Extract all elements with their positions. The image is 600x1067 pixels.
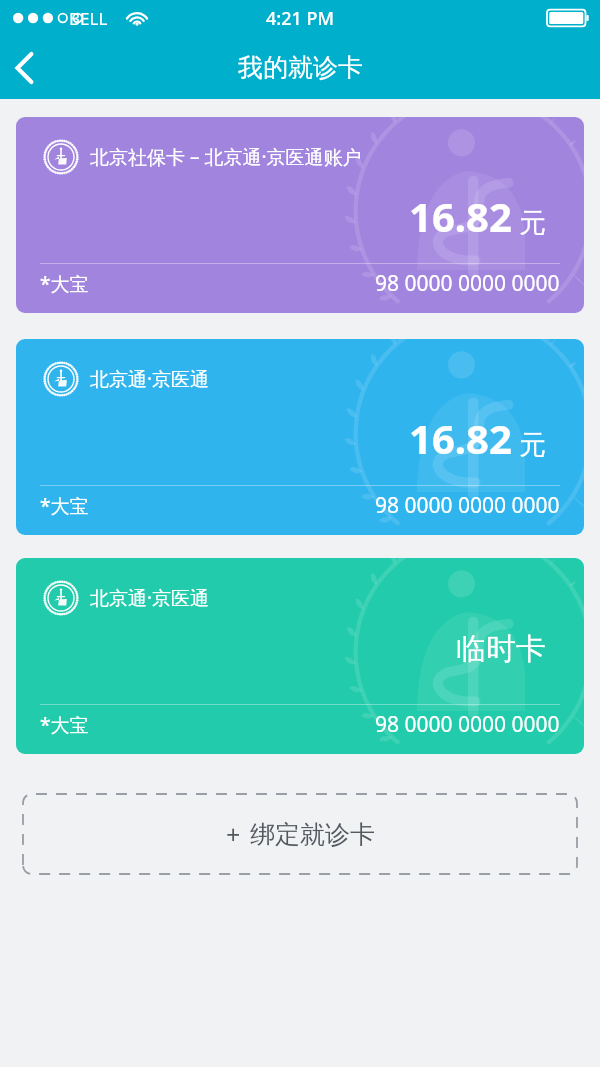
staticText: 98 0000 0000 0000: [375, 269, 560, 298]
staticText: 元: [519, 428, 546, 462]
staticText: 北京通·京医通: [90, 585, 210, 611]
staticText: 北京社保卡 – 北京通·京医通账户: [90, 144, 362, 170]
staticText: *大宝: [40, 493, 89, 519]
button[interactable]: 北京通·京医通: [16, 558, 584, 754]
button[interactable]: 北京通·京医通: [16, 339, 584, 535]
staticText: 98 0000 0000 0000: [375, 710, 560, 739]
button[interactable]: Back: [0, 36, 66, 99]
staticText: BELL: [69, 7, 108, 30]
button[interactable]: +: [22, 793, 578, 875]
staticText: 元: [519, 206, 546, 240]
staticText: 我的就诊卡: [238, 52, 363, 83]
staticText: *大宝: [40, 712, 89, 738]
staticText: 16.82: [409, 189, 512, 243]
staticText: 绑定就诊卡: [250, 819, 375, 850]
staticText: +: [226, 817, 241, 851]
staticText: 98 0000 0000 0000: [375, 491, 560, 520]
staticText: *大宝: [40, 271, 89, 297]
staticText: 4:21 PM: [266, 6, 334, 31]
staticText: 临时卡: [456, 630, 546, 668]
button[interactable]: 北京社保卡 – 北京通·京医通账户: [16, 117, 584, 313]
staticText: 北京通·京医通: [90, 366, 210, 392]
staticText: 16.82: [409, 411, 512, 465]
